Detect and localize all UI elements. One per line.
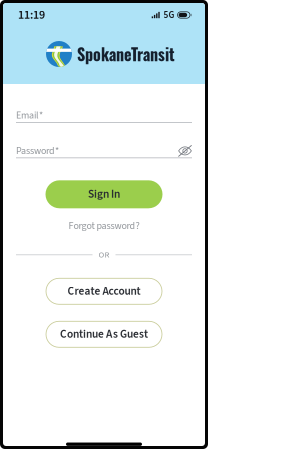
staticText: Create Account [67,283,140,299]
button[interactable]: Create Account [46,278,162,304]
staticText: Sign In [88,186,120,202]
button[interactable]: Forgot password? [68,219,139,232]
staticText: Forgot password? [68,219,139,233]
staticText: SpokaneTransit [77,42,175,66]
button[interactable]: Show password [178,145,192,157]
staticText: OR [98,249,109,261]
staticText: Email* [16,108,43,123]
staticText: Password* [16,144,59,158]
button[interactable]: Sign In [45,180,162,208]
staticText: Continue As Guest [60,326,148,342]
button[interactable]: Continue As Guest [46,321,162,347]
staticText: 11:19 [18,6,45,24]
staticText: 5G [163,8,174,22]
